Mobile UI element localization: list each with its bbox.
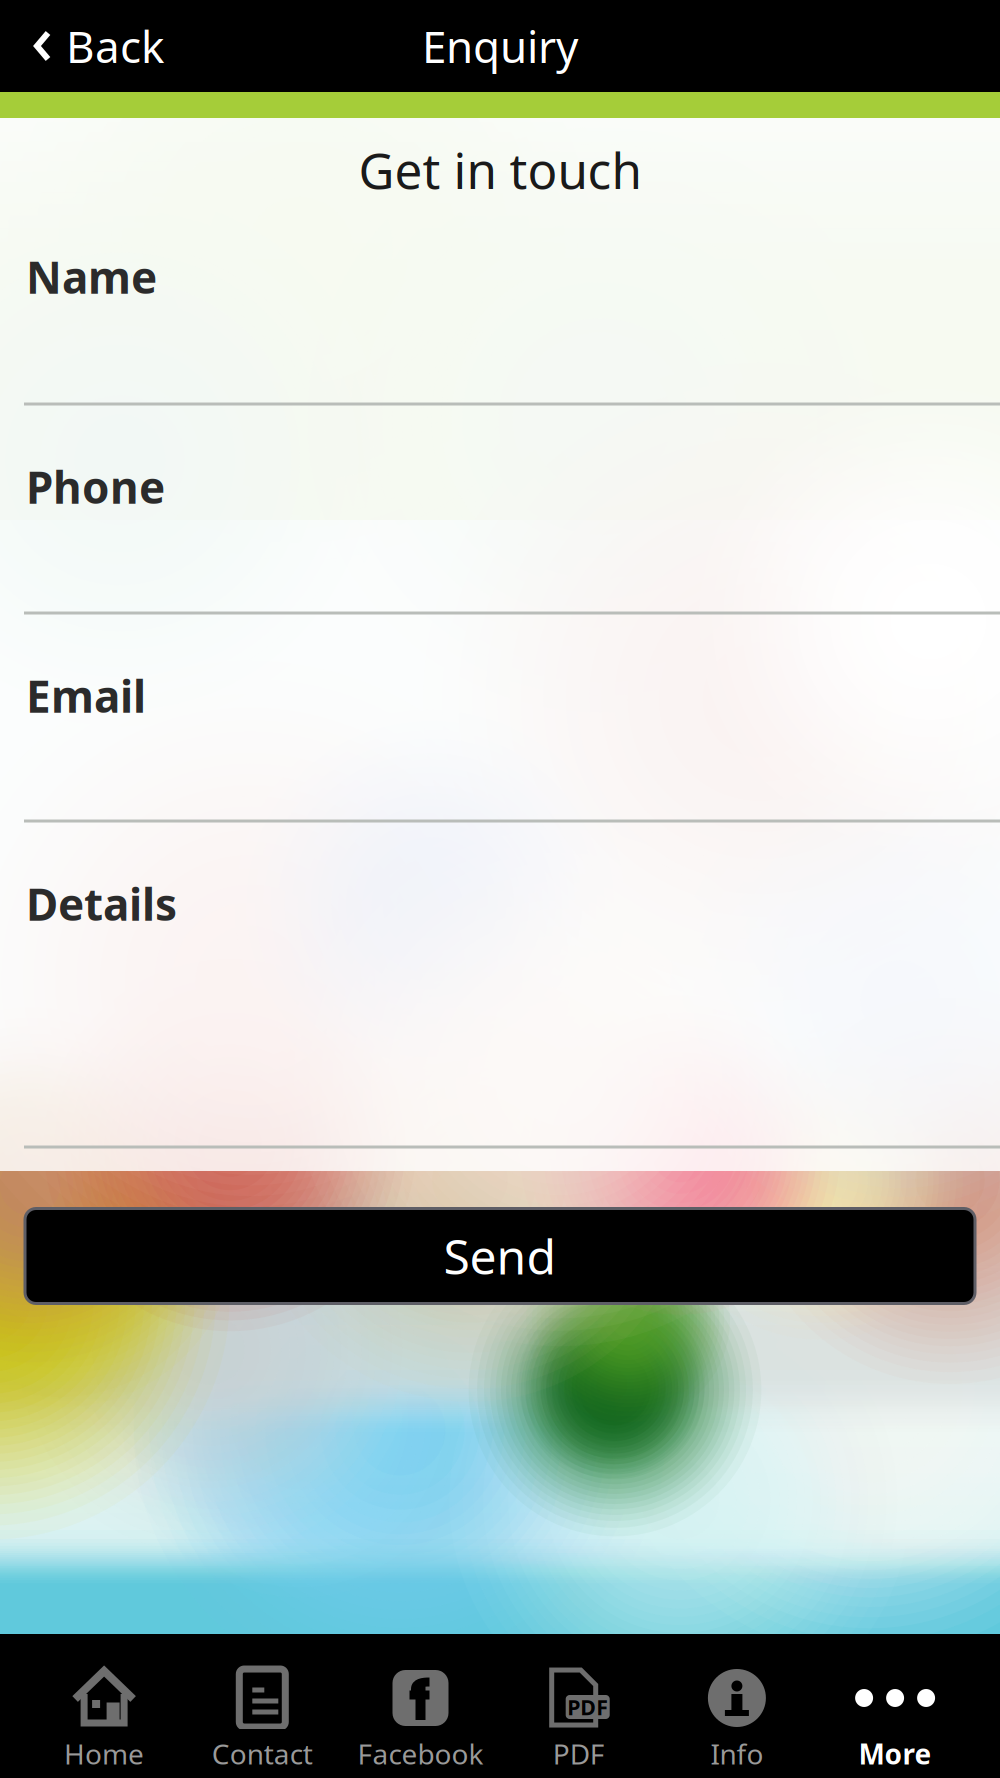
button[interactable]: Send: [25, 1208, 975, 1303]
staticText: Email: [26, 666, 146, 725]
staticText: Details: [26, 874, 177, 933]
button[interactable]: Name: [0, 213, 1000, 405]
staticText: Info: [710, 1735, 763, 1772]
staticText: Facebook: [357, 1735, 483, 1772]
staticText: Contact: [212, 1735, 313, 1772]
staticText: Home: [64, 1735, 144, 1772]
button[interactable]: Details: [0, 822, 1000, 1148]
button[interactable]: Contact: [183, 1634, 341, 1778]
button[interactable]: More: [816, 1634, 974, 1778]
staticText: Back: [66, 17, 164, 75]
button[interactable]: Phone: [0, 405, 1000, 614]
staticText: Send: [443, 1224, 556, 1288]
button[interactable]: Email: [0, 614, 1000, 822]
button[interactable]: Facebook: [341, 1634, 500, 1778]
staticText: PDF: [553, 1735, 605, 1772]
button[interactable]: Back: [0, 0, 188, 92]
staticText: Get in touch: [358, 137, 641, 202]
staticText: More: [859, 1735, 932, 1772]
button[interactable]: Home: [25, 1634, 183, 1778]
staticText: Enquiry: [422, 17, 578, 75]
staticText: PDF: [567, 1693, 608, 1721]
button[interactable]: PDF: [500, 1634, 658, 1778]
button[interactable]: Info: [658, 1634, 816, 1778]
staticText: Phone: [26, 457, 165, 516]
staticText: Name: [26, 247, 157, 306]
